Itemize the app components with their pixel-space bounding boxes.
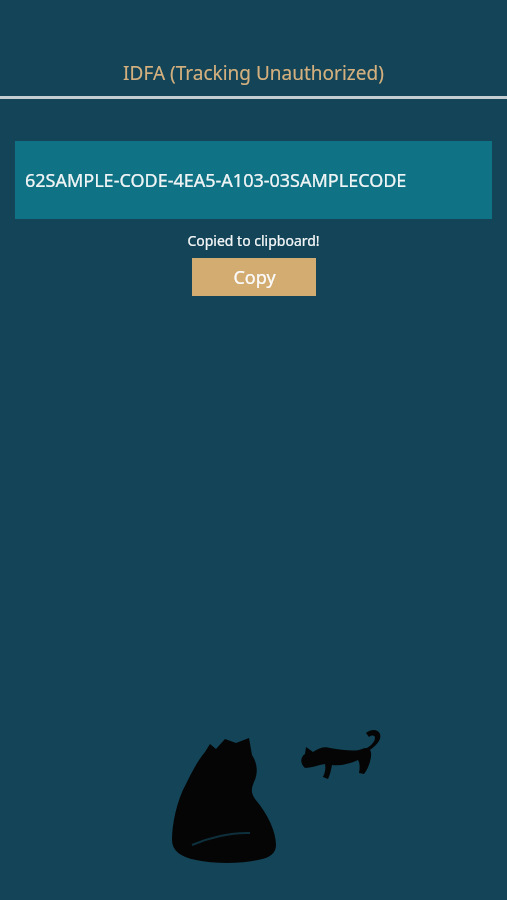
- staticText: IDFA (Tracking Unauthorized): [123, 60, 384, 86]
- button[interactable]: 62SAMPLE-CODE-4EA5-A103-03SAMPLECODE: [15, 141, 492, 219]
- staticText: Copied to clipboard!: [187, 231, 320, 250]
- button[interactable]: Copy: [192, 258, 316, 296]
- staticText: 62SAMPLE-CODE-4EA5-A103-03SAMPLECODE: [25, 168, 407, 193]
- other: Cat illustration: [0, 0, 507, 900]
- staticText: Copy: [233, 265, 276, 290]
